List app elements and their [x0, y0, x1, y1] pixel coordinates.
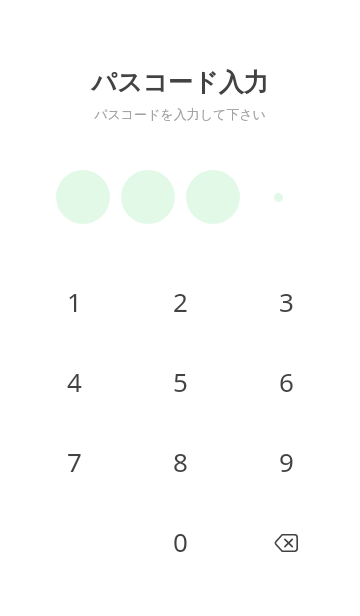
- button[interactable]: 1: [21, 261, 127, 341]
- staticText: 6: [279, 364, 294, 399]
- button[interactable]: 0: [127, 501, 233, 581]
- button[interactable]: Backspace: [233, 501, 339, 581]
- button[interactable]: 3: [233, 261, 339, 341]
- button[interactable]: 2: [127, 261, 233, 341]
- staticText: 9: [279, 444, 294, 479]
- button[interactable]: 4: [21, 341, 127, 421]
- staticText: 8: [173, 444, 188, 479]
- staticText: 7: [67, 444, 82, 479]
- staticText: 3: [279, 284, 294, 319]
- button[interactable]: 5: [127, 341, 233, 421]
- staticText: パスコードを入力して下さい: [0, 106, 360, 122]
- staticText: 4: [67, 364, 82, 399]
- staticText: 2: [173, 284, 188, 319]
- staticText: 1: [67, 284, 82, 319]
- staticText: パスコード入力: [0, 67, 360, 98]
- button[interactable]: 7: [21, 421, 127, 501]
- button[interactable]: 6: [233, 341, 339, 421]
- staticText: 5: [173, 364, 188, 399]
- staticText: 0: [173, 524, 188, 559]
- button[interactable]: 9: [233, 421, 339, 501]
- button[interactable]: 8: [127, 421, 233, 501]
